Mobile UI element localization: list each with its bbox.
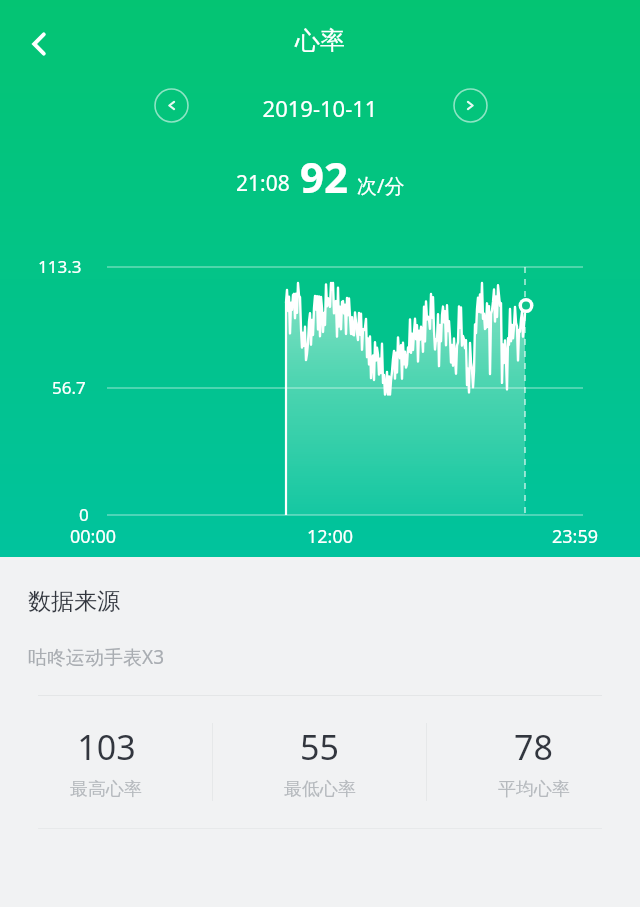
staticText: 最低心率: [284, 778, 356, 801]
staticText: 113.3: [38, 255, 82, 278]
staticText: 数据来源: [28, 587, 120, 616]
staticText: 最高心率: [70, 778, 142, 801]
button[interactable]: 55: [213, 724, 426, 801]
staticText: 心率: [0, 25, 640, 56]
staticText: 103: [77, 724, 136, 770]
staticText: 55: [300, 724, 339, 770]
button[interactable]: Next day: [452, 87, 488, 123]
staticText: 次/分: [357, 172, 405, 199]
staticText: 21:08: [236, 169, 290, 198]
button[interactable]: 78: [427, 724, 640, 801]
staticText: 23:59: [552, 524, 599, 549]
staticText: 78: [514, 724, 553, 770]
staticText: 咕咚运动手表X3: [28, 644, 165, 670]
button[interactable]: Back: [10, 15, 68, 73]
button[interactable]: Previous day: [153, 87, 189, 123]
staticText: 56.7: [52, 376, 86, 399]
staticText: 2019-10-11: [0, 93, 640, 123]
button[interactable]: 103: [0, 724, 212, 801]
staticText: 0: [79, 503, 89, 526]
staticText: 平均心率: [498, 778, 570, 801]
staticText: 92: [300, 148, 349, 205]
staticText: 00:00: [70, 524, 117, 549]
staticText: 12:00: [307, 524, 354, 549]
button[interactable]: 咕咚运动手表X3: [0, 644, 640, 670]
